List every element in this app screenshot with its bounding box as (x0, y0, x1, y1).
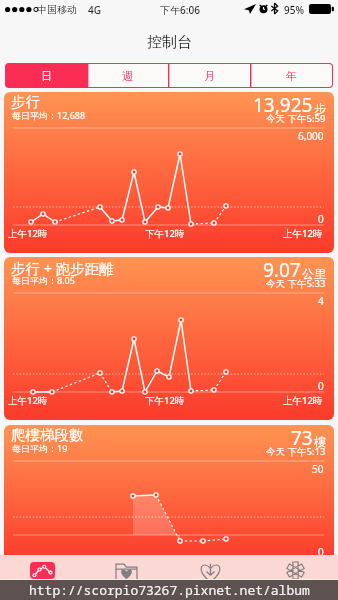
staticText: 73 (291, 425, 313, 451)
button[interactable]: 步行 (4, 92, 334, 253)
staticText: 月 (204, 69, 215, 83)
staticText: 0 (318, 545, 324, 559)
staticText: 上午12時 (8, 227, 48, 240)
staticText: 下午12時 (145, 227, 185, 240)
button[interactable]: 健康資料 (84, 555, 168, 579)
staticText: 50 (312, 462, 324, 476)
staticText: 爬樓梯段數 (11, 426, 84, 444)
staticText: 0 (318, 212, 324, 226)
staticText: 上午12時 (283, 394, 323, 407)
button[interactable]: 月 (168, 64, 250, 87)
staticText: 步行 + 跑步距離 (11, 258, 114, 278)
button[interactable]: 週 (87, 64, 168, 87)
staticText: 上午12時 (8, 394, 48, 407)
staticText: 95% (284, 3, 304, 17)
button[interactable]: 步行 + 跑步距離 (4, 257, 334, 420)
staticText: 控制台 (147, 33, 192, 52)
button[interactable]: 年 (250, 64, 332, 87)
staticText: 9.07 (263, 257, 301, 283)
button[interactable]: 來源 (168, 555, 253, 579)
staticText: 0 (318, 379, 324, 393)
staticText: 公里 (302, 266, 326, 281)
button[interactable]: 控制台 (0, 555, 84, 579)
staticText: 每日平均：12,688 (12, 109, 86, 121)
staticText: 年 (286, 69, 297, 83)
staticText: 13,925 (253, 92, 313, 118)
staticText: 下午12時 (145, 394, 185, 407)
staticText: 中国移动 (37, 3, 77, 16)
staticText: 今天 下午5:33 (266, 277, 326, 290)
staticText: 上午12時 (283, 227, 323, 240)
staticText: 今天 下午5:59 (266, 112, 326, 125)
staticText: 每日平均：19 (12, 442, 68, 454)
staticText: 步行 (11, 93, 40, 111)
staticText: 今天 下午5:13 (266, 445, 326, 458)
staticText: http://scorpio73267.pixnet.net/album (29, 581, 310, 599)
button[interactable]: 爬樓梯段數 (4, 425, 334, 563)
staticText: 樓 (314, 434, 326, 449)
staticText: 週 (122, 69, 133, 83)
staticText: 上午12時 (8, 560, 48, 563)
staticText: 下午6:06 (160, 3, 200, 17)
staticText: 4G (88, 3, 101, 17)
staticText: 上午12時 (283, 560, 323, 563)
button[interactable]: 醫療卡 (253, 555, 338, 579)
staticText: 每日平均：8.05 (12, 274, 75, 286)
staticText: 6,000 (298, 129, 324, 143)
staticText: 步 (314, 101, 326, 116)
staticText: 日 (41, 69, 52, 83)
button[interactable]: 日 (6, 64, 87, 87)
staticText: 4 (318, 294, 324, 308)
